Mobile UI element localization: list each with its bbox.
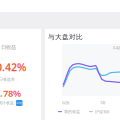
staticText: 0.42% [113,45,120,50]
staticText: 详情 [16,101,22,105]
staticText: 累计收益 [0,100,14,105]
staticText: 日收益 [1,44,16,51]
staticText: 与大盘对比 [48,33,83,41]
staticText: 0.42% [0,60,26,74]
staticText: 沪深300 [95,109,109,114]
staticText: 7/8 [100,100,105,105]
staticText: 我的收益 [64,109,80,114]
staticText: 2.78% [0,87,21,99]
staticText: 6/28 [62,100,69,105]
button[interactable]: 与大盘对比 [45,29,120,120]
staticText: 日收益率 [0,77,15,82]
button[interactable]: 日收益 [0,29,41,120]
